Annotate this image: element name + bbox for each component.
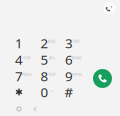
button[interactable]: 3 [57, 32, 81, 54]
staticText: 8 [40, 67, 48, 85]
button[interactable]: Star [7, 81, 31, 103]
staticText: 1 [15, 34, 23, 52]
button[interactable]: 2 [32, 32, 56, 54]
staticText: 6 [65, 51, 73, 68]
button[interactable]: 1 [7, 32, 31, 54]
staticText: TUV [48, 71, 56, 77]
staticText: 7 [15, 67, 23, 85]
button[interactable]: Call [92, 68, 113, 89]
button[interactable]: 7 [7, 65, 31, 87]
staticText: DEF [73, 38, 80, 44]
staticText: MNO [72, 55, 82, 60]
staticText: # [64, 83, 73, 101]
button[interactable]: 6 [57, 48, 81, 70]
staticText: GHI [23, 55, 30, 60]
staticText: + [51, 87, 53, 93]
staticText: 3 [65, 34, 73, 52]
staticText: 2 [40, 34, 48, 52]
button[interactable]: # [57, 81, 81, 103]
staticText: 0 [40, 83, 48, 101]
staticText: 9 [65, 67, 73, 85]
staticText: PQRS [22, 71, 32, 77]
staticText: 5 [40, 51, 48, 68]
staticText: WXYZ [71, 71, 82, 77]
staticText: 4 [15, 51, 23, 68]
button[interactable]: 4 [7, 48, 31, 70]
staticText: JKL [49, 55, 55, 60]
staticText: ABC [48, 38, 57, 44]
button[interactable]: 0 [32, 81, 56, 103]
button[interactable]: Call options [102, 1, 117, 16]
button[interactable]: 9 [57, 65, 81, 87]
button[interactable]: 8 [32, 65, 56, 87]
button[interactable]: 5 [32, 48, 56, 70]
